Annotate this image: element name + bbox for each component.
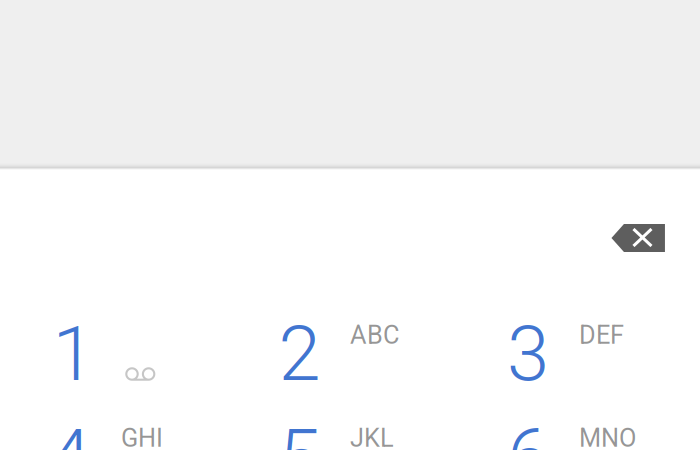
button[interactable]: 5 xyxy=(183,404,412,450)
staticText: 3 xyxy=(507,309,549,399)
button[interactable]: 2 xyxy=(183,301,412,404)
button[interactable]: 3 xyxy=(412,301,641,404)
staticText: GHI xyxy=(121,423,163,450)
button[interactable]: 6 xyxy=(412,404,641,450)
staticText: 6 xyxy=(507,412,549,450)
staticText: 4 xyxy=(48,412,90,450)
staticText: ABC xyxy=(350,320,399,350)
staticText: 5 xyxy=(278,412,320,450)
staticText: JKL xyxy=(350,423,394,450)
button[interactable]: Delete xyxy=(593,210,683,266)
button[interactable]: 1 xyxy=(0,301,183,404)
staticText: MNO xyxy=(579,423,636,450)
button[interactable]: 4 xyxy=(0,404,183,450)
staticText: DEF xyxy=(579,320,624,350)
staticText: 1 xyxy=(52,309,94,399)
staticText: 2 xyxy=(278,309,320,399)
